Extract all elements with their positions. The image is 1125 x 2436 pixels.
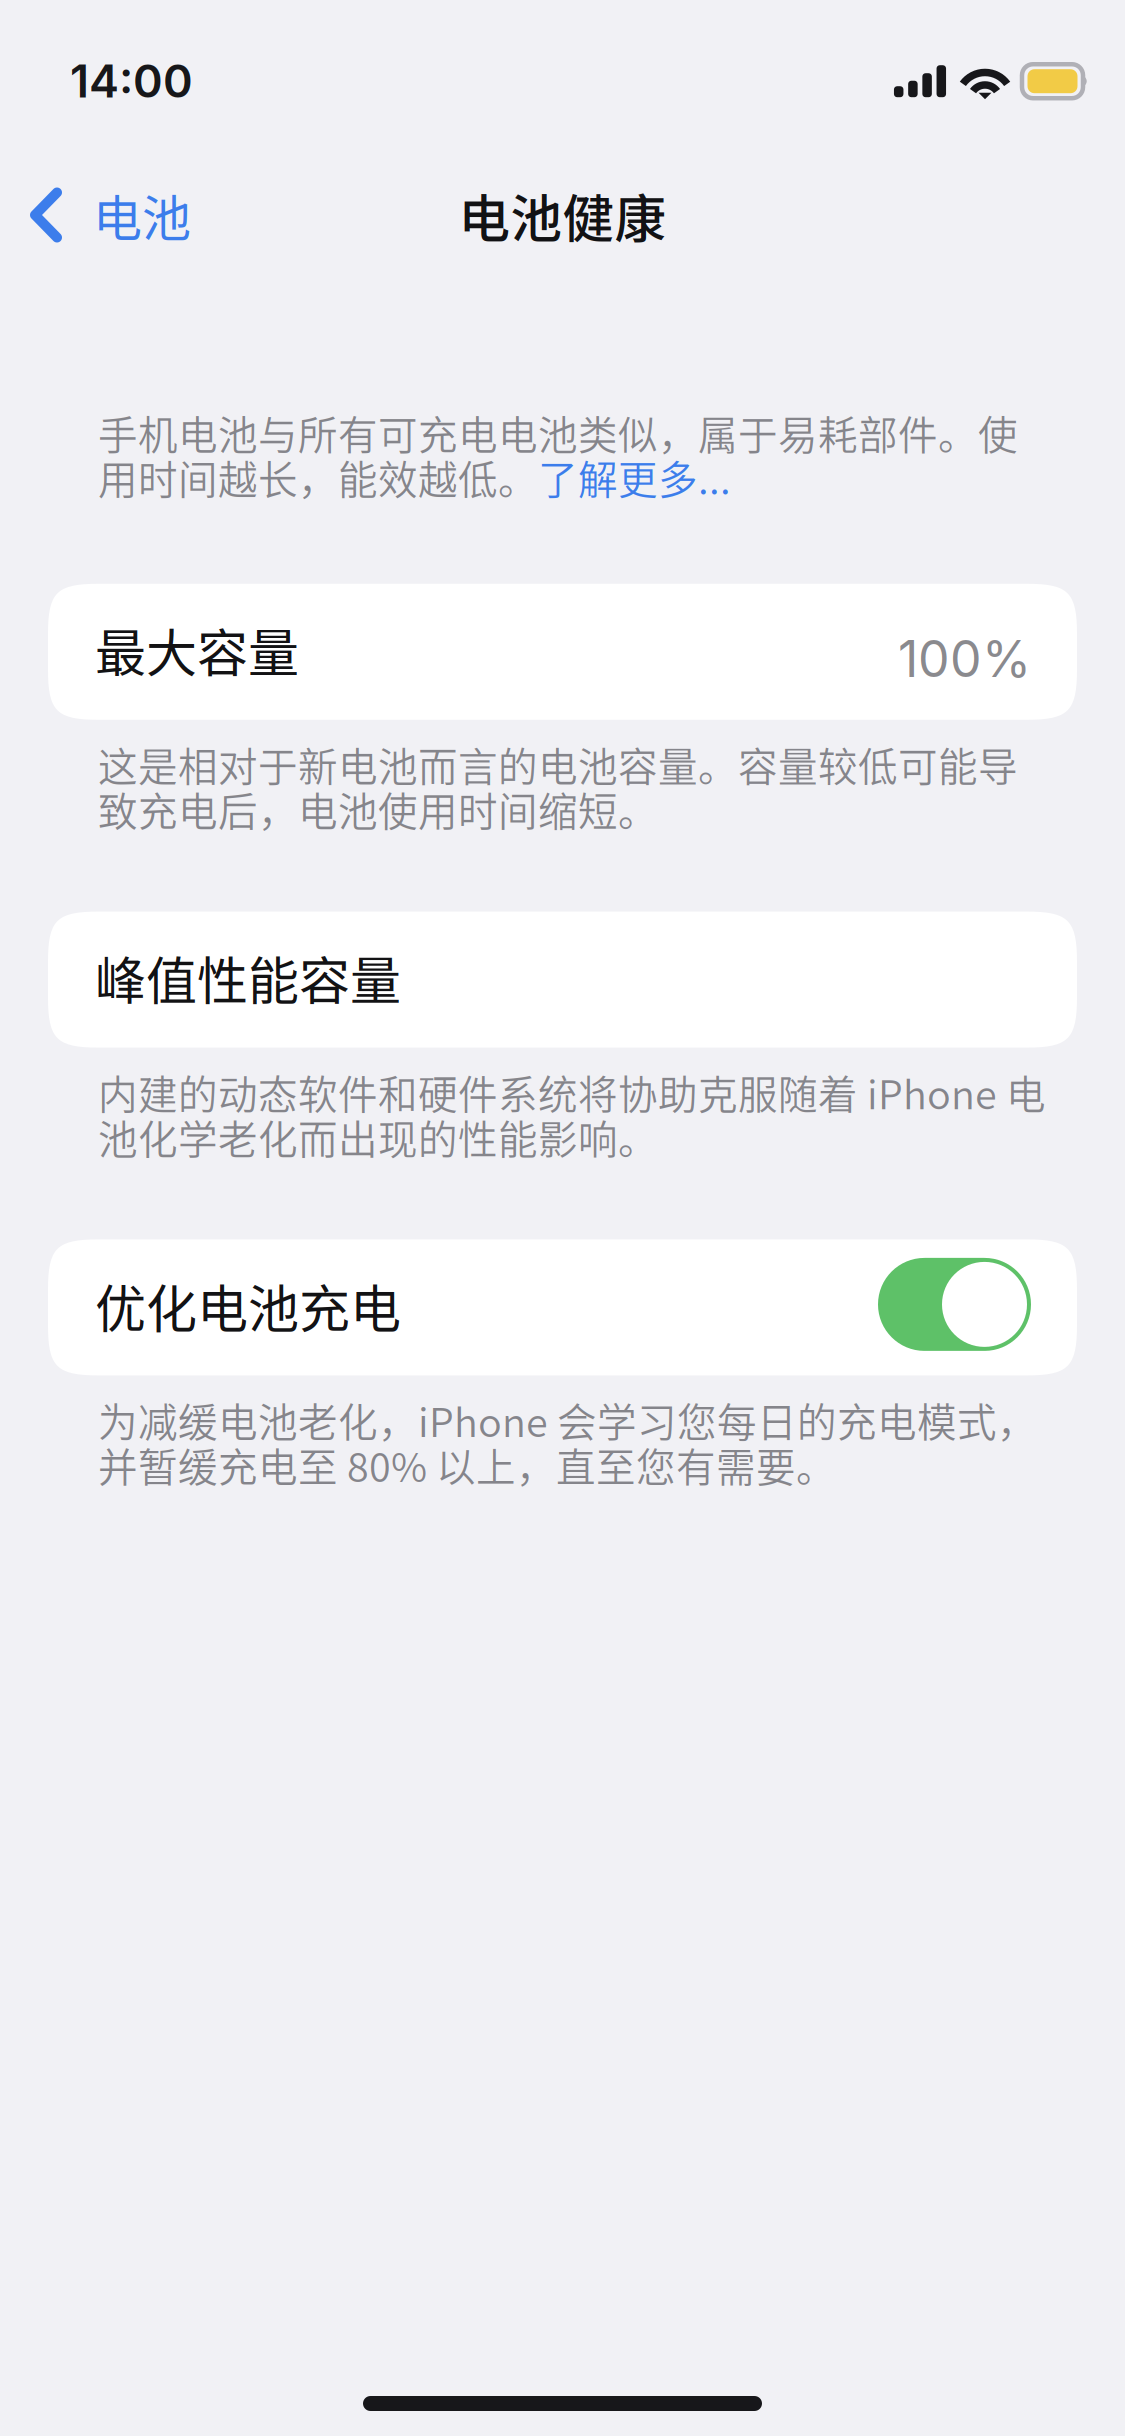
staticText: 手机电池与所有可充电电池类似，属于易耗部件。使用时间越长，能效越低。了解更多..… [98, 410, 1018, 500]
button[interactable]: 电池 [0, 177, 270, 252]
staticText: 14:00 [70, 54, 193, 108]
button[interactable]: 优化电池充电 [0, 1239, 1125, 1375]
staticText: 优化电池充电 [95, 1268, 401, 1342]
staticText: 最大容量 [95, 613, 299, 687]
staticText: 峰值性能容量 [95, 941, 401, 1014]
staticText: 为减缓电池老化，iPhone 会学习您每日的充电模式，并暂缓充电至 80% 以上… [98, 1397, 1037, 1487]
staticText: 电池 [93, 179, 191, 250]
staticText: 100% [898, 628, 1031, 689]
staticText: 内建的动态软件和硬件系统将协助克服随着 iPhone 电池化学老化而出现的性能影… [98, 1070, 1046, 1159]
staticText: 这是相对于新电池而言的电池容量。容量较低可能导致充电后，电池使用时间缩短。 [98, 742, 1018, 832]
button[interactable]: 峰值性能容量 [0, 912, 1125, 1048]
staticText: 电池健康 [458, 178, 666, 252]
button[interactable]: 最大容量 [0, 584, 1125, 720]
